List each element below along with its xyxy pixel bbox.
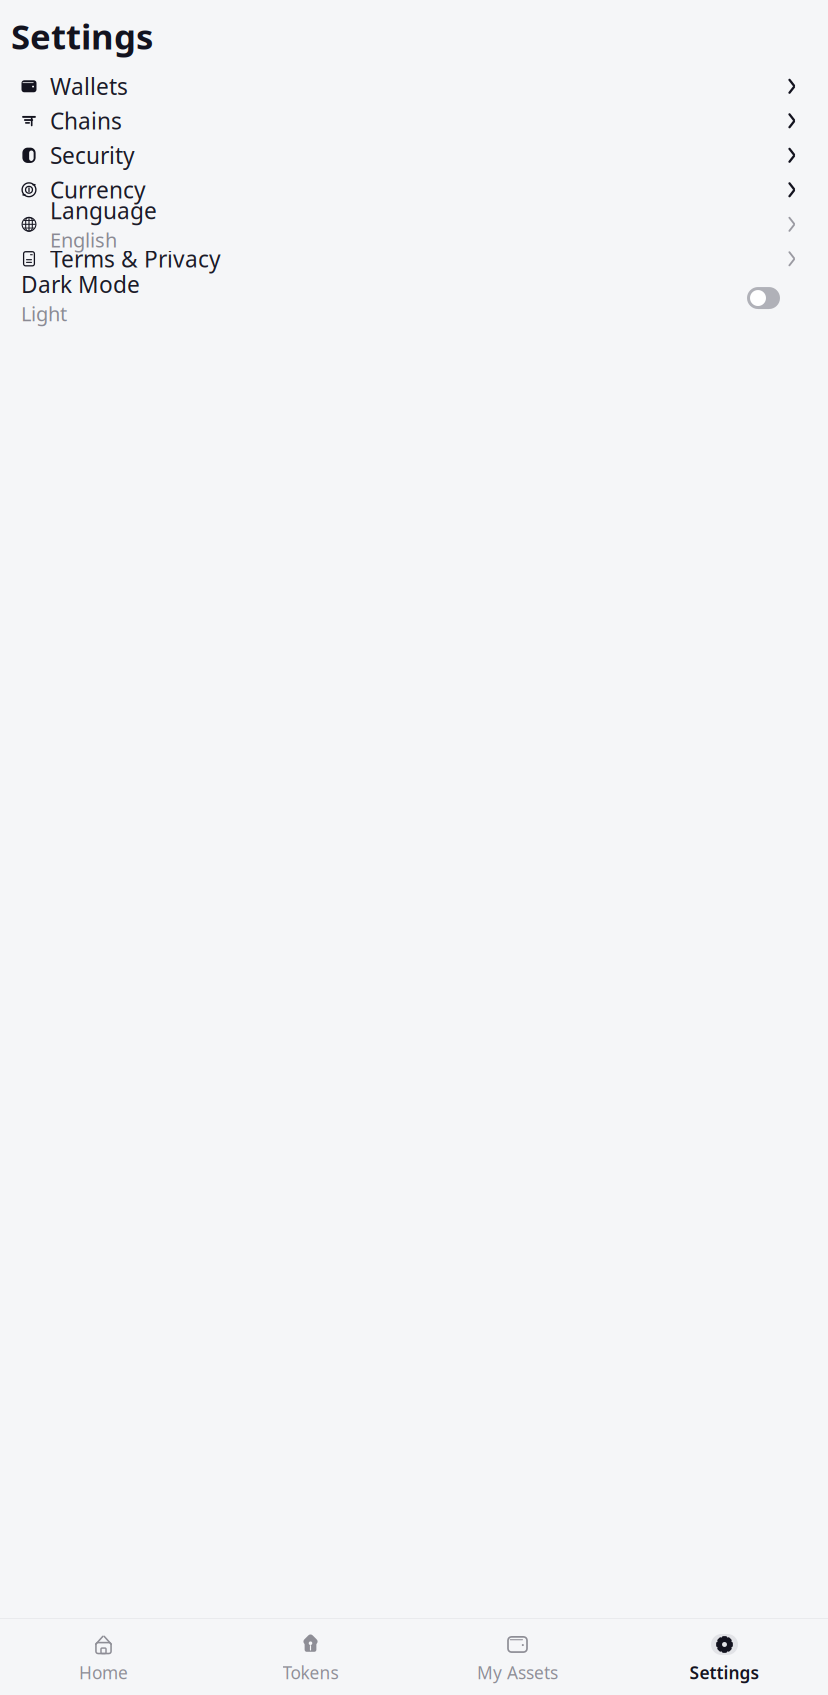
button[interactable]: Tokens [207,1627,414,1691]
button[interactable]: Home [0,1627,207,1691]
staticText: Wallets [50,71,128,101]
staticText: Home [79,1661,128,1684]
button[interactable]: Dark Mode [0,276,828,320]
button[interactable]: Currency [0,172,828,207]
staticText: Dark Mode [21,269,140,299]
staticText: Settings [11,13,153,59]
button[interactable]: Wallets [0,69,828,103]
button[interactable]: My Assets [414,1627,621,1691]
staticText: Terms & Privacy [50,244,221,274]
button[interactable]: Chains [0,103,828,138]
button[interactable]: Language [0,207,828,241]
staticText: Light [21,300,67,327]
staticText: Security [50,140,135,170]
button[interactable]: Settings [621,1627,828,1691]
staticText: Language [50,195,157,226]
staticText: Currency [50,175,146,205]
staticText: Settings [689,1661,759,1684]
button[interactable]: Security [0,138,828,172]
staticText: English [50,227,117,253]
staticText: Chains [50,106,122,136]
button[interactable]: Terms & Privacy [0,241,828,276]
staticText: My Assets [477,1661,558,1684]
staticText: Tokens [282,1661,338,1684]
